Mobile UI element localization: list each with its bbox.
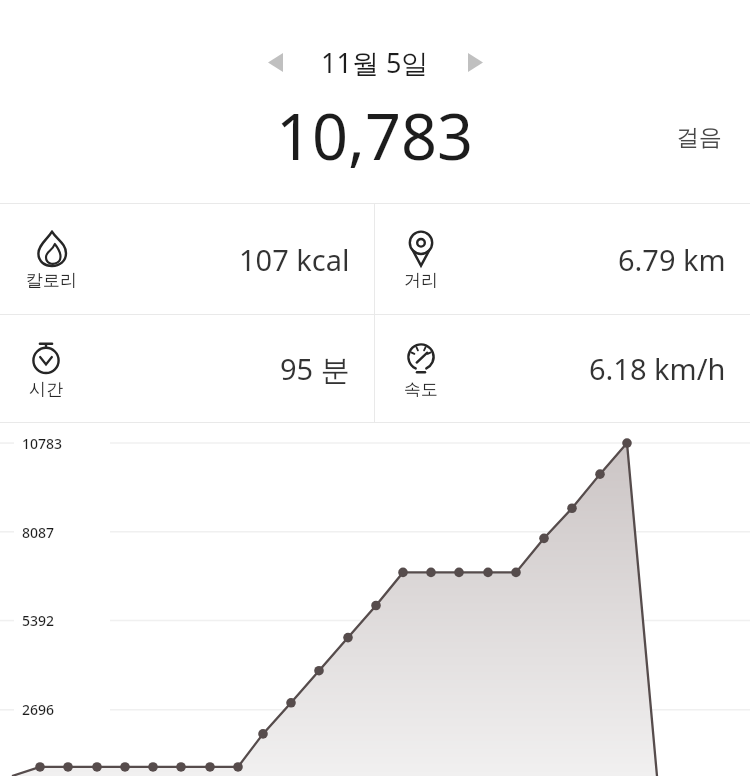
staticText: 10783 xyxy=(22,434,63,453)
staticText: 속도 xyxy=(404,379,438,400)
staticText: 8087 xyxy=(22,523,55,542)
staticText: 5392 xyxy=(22,611,55,630)
button[interactable]: 시간 xyxy=(0,315,374,422)
staticText: 칼로리 xyxy=(26,270,77,291)
staticText: 10,783 xyxy=(276,93,474,179)
staticText: 걸음 xyxy=(676,123,722,152)
staticText: 95 분 xyxy=(280,349,350,389)
staticText: 2696 xyxy=(22,700,55,719)
button[interactable]: Next day xyxy=(452,39,498,85)
button[interactable]: Previous day xyxy=(252,39,298,85)
button[interactable]: 칼로리 xyxy=(0,204,374,314)
button[interactable]: 거리 xyxy=(375,204,750,314)
staticText: 6.79 km xyxy=(618,240,726,279)
staticText: 시간 xyxy=(29,379,63,400)
staticText: 11월 5일 xyxy=(321,44,429,81)
staticText: 거리 xyxy=(404,270,438,291)
button[interactable]: 속도 xyxy=(375,315,750,422)
staticText: 107 kcal xyxy=(239,240,350,279)
staticText: 6.18 km/h xyxy=(589,349,726,388)
